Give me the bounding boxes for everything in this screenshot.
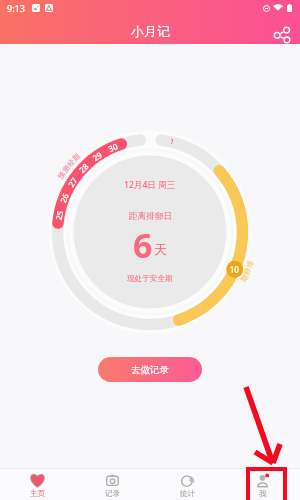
button[interactable]: Share	[264, 16, 300, 52]
staticText: 统计	[180, 489, 195, 498]
staticText: 我	[259, 489, 267, 498]
staticText: 主页	[30, 489, 45, 498]
staticText: 记录	[105, 489, 120, 498]
staticText: 去做记录	[131, 364, 169, 376]
button[interactable]: 记录	[75, 469, 150, 498]
staticText: 小月记	[131, 23, 170, 39]
button[interactable]: 统计	[150, 469, 225, 498]
staticText: 天	[154, 241, 167, 257]
button[interactable]: 去做记录	[98, 357, 202, 382]
staticText: 9:13	[7, 2, 25, 14]
staticText: 距离排卵日	[129, 211, 172, 222]
button[interactable]: 主页	[0, 469, 75, 498]
staticText: 12月4日 周三	[124, 179, 176, 191]
staticText: 现处于安全期	[127, 274, 173, 284]
button[interactable]: 我	[225, 469, 300, 498]
staticText: 6	[133, 222, 153, 268]
